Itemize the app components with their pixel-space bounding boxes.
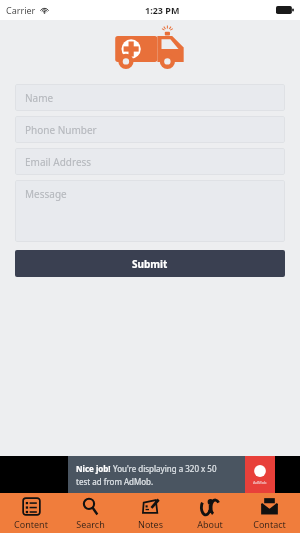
staticText: 1:23 PM: [145, 4, 180, 16]
button[interactable]: Email Address: [15, 148, 285, 175]
staticText: Search: [76, 518, 105, 530]
button[interactable]: Name: [15, 84, 285, 111]
staticText: Contact: [253, 518, 286, 530]
staticText: Name: [25, 91, 54, 105]
button[interactable]: Message: [15, 180, 285, 242]
staticText: test ad from AdMob.: [76, 476, 154, 487]
staticText: Carrier: [6, 4, 36, 16]
button[interactable]: About: [181, 493, 239, 533]
button[interactable]: Submit: [15, 250, 285, 277]
staticText: Phone Number: [25, 123, 97, 137]
button[interactable]: Notes: [121, 493, 179, 533]
button[interactable]: Phone Number: [15, 116, 285, 143]
staticText: AdMob: [253, 480, 267, 485]
staticText: Message: [25, 187, 67, 201]
button[interactable]: Contact: [240, 493, 298, 533]
staticText: Notes: [138, 518, 163, 530]
button[interactable]: Search: [61, 493, 119, 533]
staticText: You're displaying a 320 x 50: [111, 463, 217, 474]
staticText: About: [197, 518, 223, 530]
button[interactable]: Content: [2, 493, 60, 533]
staticText: Nice job!: [76, 463, 111, 474]
staticText: Submit: [132, 257, 168, 271]
staticText: Content: [14, 518, 48, 530]
button[interactable]: Advertisement: [0, 456, 300, 493]
staticText: Email Address: [25, 155, 92, 169]
